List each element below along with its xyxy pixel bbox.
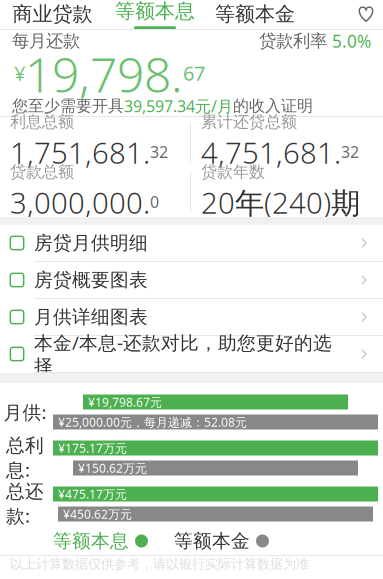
staticText: 您至少需要开具	[12, 96, 124, 116]
staticText: 本金/本息-还款对比，助您更好的选择	[34, 330, 332, 378]
staticText: 19,798.	[25, 42, 183, 106]
staticText: 1,751,681.	[10, 133, 150, 172]
staticText: 总利息:	[6, 434, 44, 482]
staticText: 贷款总额	[10, 162, 74, 182]
staticText: ¥475.17万元	[58, 486, 127, 502]
staticText: 5.0%	[332, 29, 371, 52]
staticText: ¥150.62万元	[78, 460, 147, 476]
staticText: 房贷月供明细	[34, 231, 148, 254]
staticText: 以上计算数据仅供参考，请以银行实际计算数据为准	[10, 556, 309, 572]
button[interactable]: 商业贷款	[0, 0, 105, 29]
staticText: 39,597.34元/月	[124, 95, 233, 117]
staticText: 4,751,681.	[201, 133, 341, 172]
staticText: 月供详细图表	[34, 305, 148, 328]
staticText: 商业贷款	[12, 2, 92, 26]
staticText: 3,000,000.	[10, 183, 150, 222]
staticText: 贷款年数	[201, 162, 265, 182]
button[interactable]: 等额本息	[105, 0, 205, 31]
button[interactable]: 房贷月供明细	[0, 225, 383, 262]
staticText: 等额本金	[174, 529, 250, 552]
staticText: ¥25,000.00元，每月递减：52.08元	[58, 414, 247, 430]
staticText: 每月还款	[12, 30, 80, 52]
staticText: 等额本金	[215, 2, 295, 26]
staticText: ¥175.17万元	[58, 440, 127, 456]
button[interactable]: 本金/本息-还款对比，助您更好的选择	[0, 336, 383, 373]
staticText: ¥19,798.67元	[88, 394, 162, 410]
staticText: ¥450.62万元	[63, 506, 132, 522]
button[interactable]: 等额本金	[205, 0, 305, 29]
staticText: 20年(240)期	[201, 183, 360, 222]
staticText: 月供:	[3, 400, 46, 424]
button[interactable]: 房贷概要图表	[0, 262, 383, 299]
staticText: 32	[341, 141, 359, 162]
staticText: 等额本息	[115, 0, 195, 23]
staticText: 的收入证明	[233, 96, 313, 116]
staticText: 利息总额	[10, 112, 74, 132]
staticText: 总还款:	[6, 480, 44, 528]
staticText: 67	[183, 60, 205, 86]
staticText: ¥	[14, 60, 25, 86]
staticText: 房贷概要图表	[34, 268, 148, 291]
staticText: 贷款利率	[259, 30, 332, 52]
staticText: 0	[150, 191, 159, 212]
button[interactable]: 收藏	[349, 0, 383, 29]
staticText: 32	[150, 141, 168, 162]
button[interactable]: 月供详细图表	[0, 299, 383, 336]
staticText: 等额本息	[53, 529, 129, 552]
staticText: 累计还贷总额	[201, 112, 297, 132]
